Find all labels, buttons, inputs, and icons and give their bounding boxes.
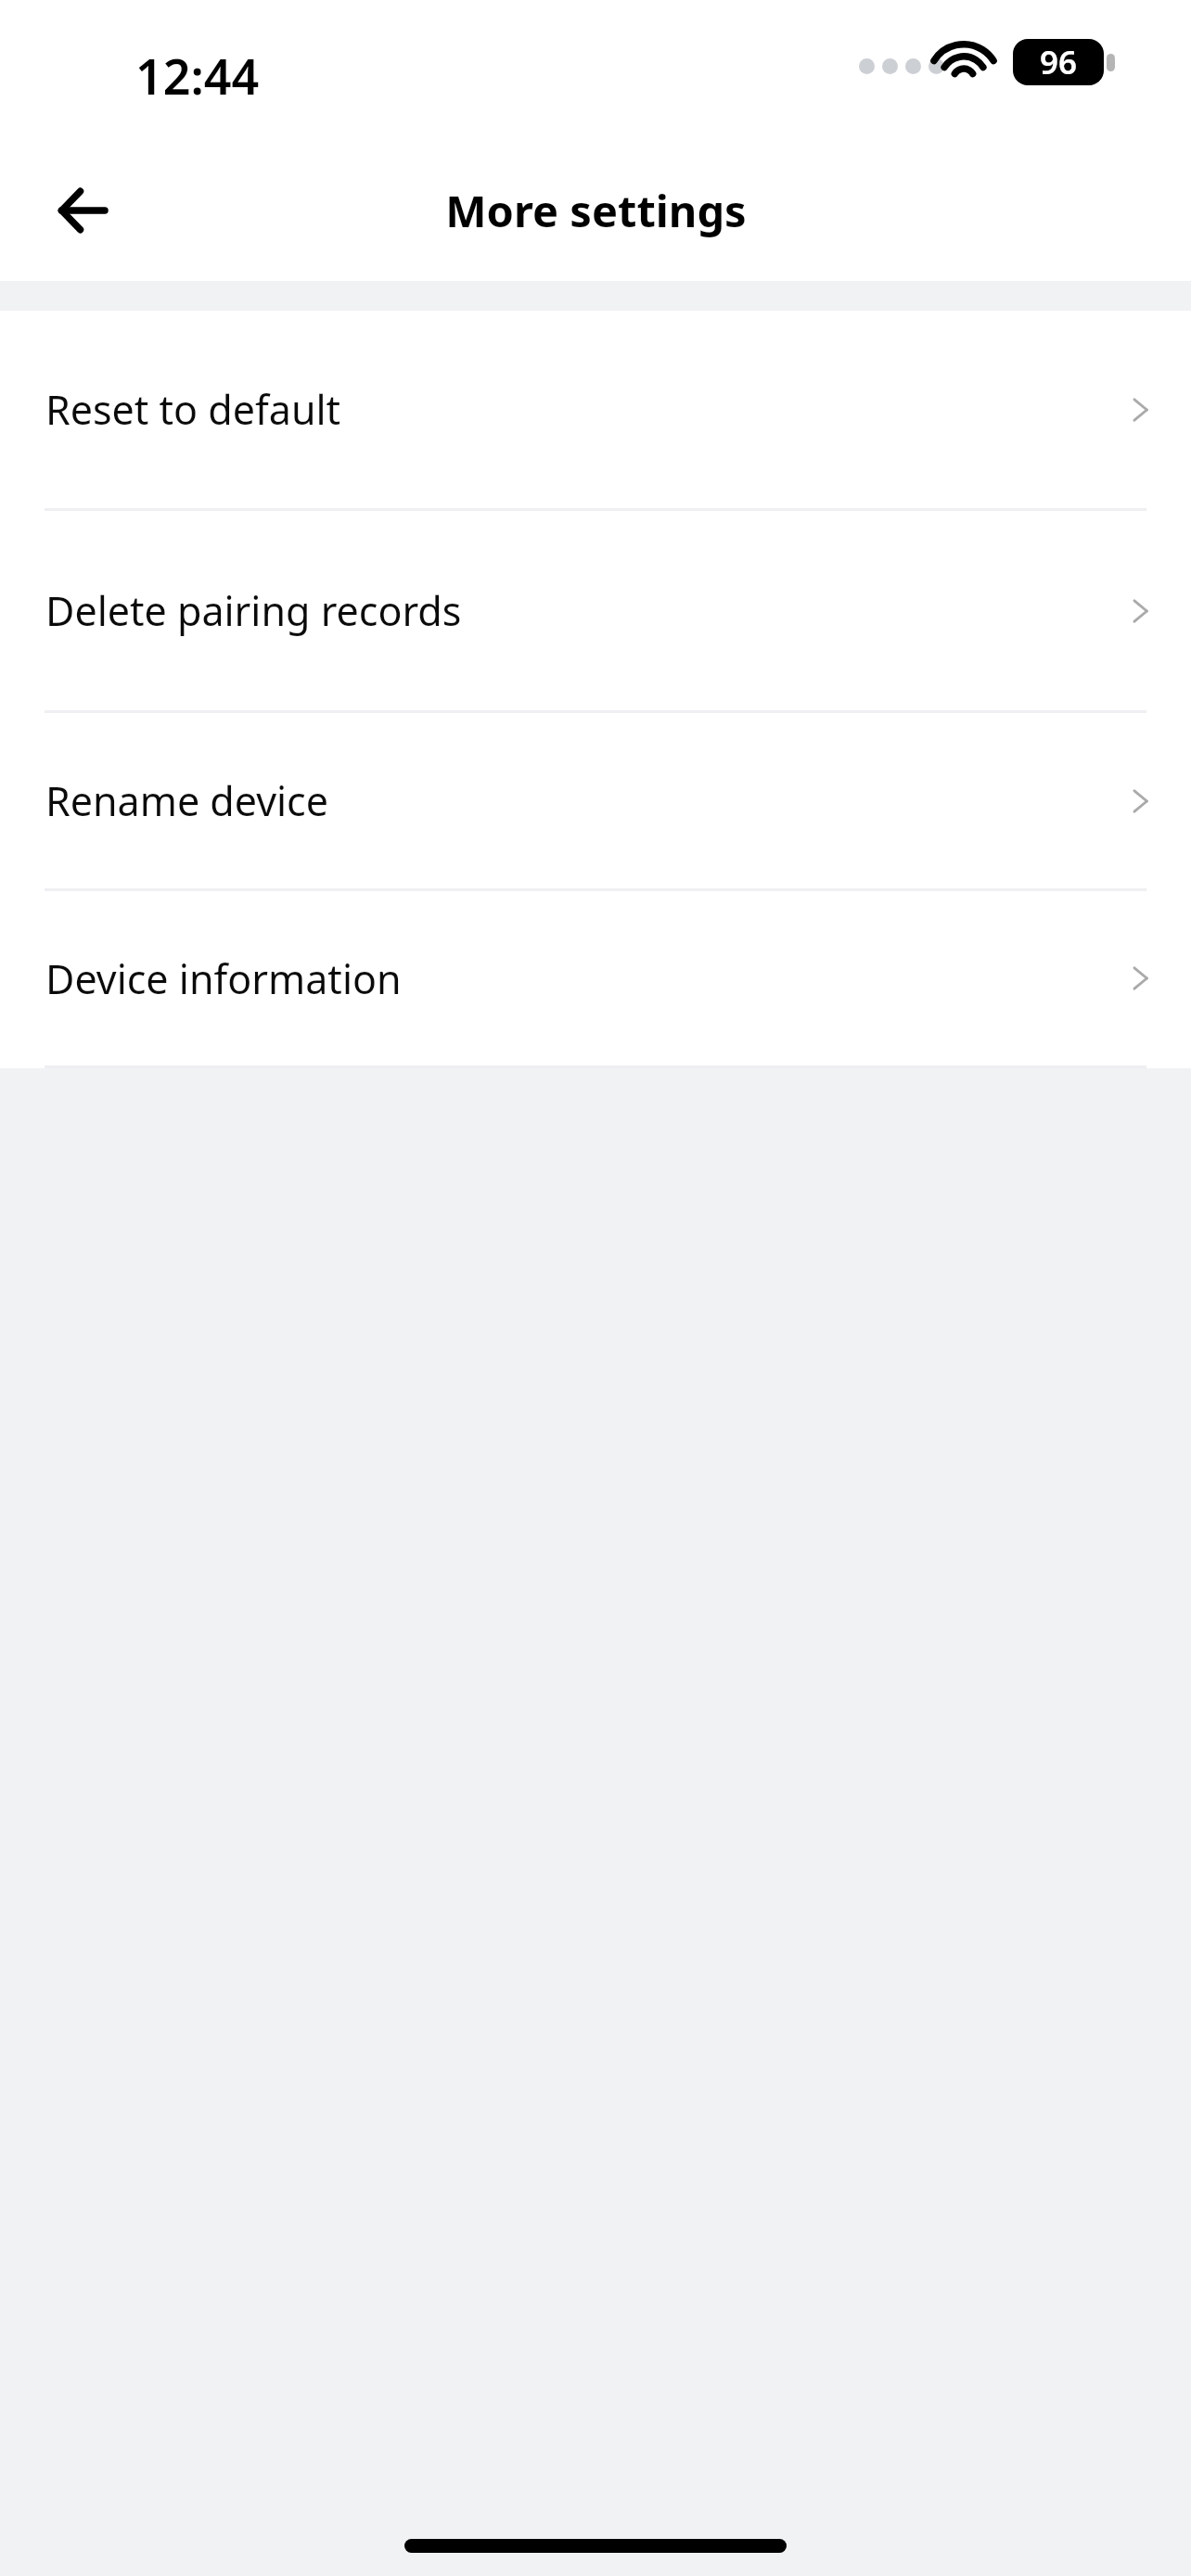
button[interactable]: Delete pairing records — [0, 511, 1191, 710]
staticText: Device information — [45, 951, 1124, 1006]
staticText: Rename device — [45, 773, 1124, 828]
button[interactable]: Device information — [0, 891, 1191, 1065]
button[interactable]: Rename device — [0, 713, 1191, 888]
button[interactable]: Reset to default — [0, 311, 1191, 508]
staticText: Delete pairing records — [45, 583, 1124, 638]
staticText: 12:44 — [135, 43, 260, 108]
staticText: More settings — [445, 181, 747, 240]
staticText: 96 — [1040, 40, 1078, 84]
button[interactable]: Back — [41, 169, 124, 252]
staticText: Reset to default — [45, 382, 1124, 437]
